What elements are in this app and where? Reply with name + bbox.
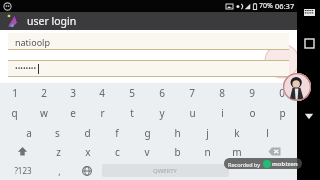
button[interactable]: 7 bbox=[177, 83, 207, 103]
staticText: 6 bbox=[159, 86, 165, 100]
button[interactable]: g bbox=[132, 123, 162, 142]
button[interactable]: 0 bbox=[267, 83, 297, 103]
staticText: 06:37 bbox=[275, 1, 295, 11]
button[interactable]: k bbox=[222, 123, 252, 142]
staticText: e bbox=[70, 106, 76, 120]
staticText: n bbox=[204, 145, 211, 159]
staticText: b bbox=[174, 145, 181, 159]
staticText: u bbox=[189, 106, 196, 120]
button[interactable]: Keyboard bbox=[299, 5, 319, 19]
button[interactable]: 1 bbox=[0, 83, 29, 103]
staticText: y bbox=[159, 106, 165, 120]
button[interactable]: 3 bbox=[58, 83, 87, 103]
button[interactable]: d bbox=[72, 123, 102, 142]
button[interactable]: e bbox=[58, 103, 87, 123]
staticText: w bbox=[40, 106, 48, 120]
button[interactable]: •••••••• bbox=[8, 60, 289, 77]
button[interactable]: b bbox=[162, 142, 192, 161]
staticText: 1 bbox=[12, 86, 18, 100]
staticText: d bbox=[84, 126, 91, 140]
button[interactable]: 2 bbox=[29, 83, 58, 103]
staticText: user login bbox=[27, 14, 77, 28]
button[interactable]: QWERTY bbox=[102, 164, 229, 177]
button[interactable]: u bbox=[177, 103, 207, 123]
button[interactable]: h bbox=[162, 123, 192, 142]
button[interactable]: o bbox=[237, 103, 267, 123]
staticText: a bbox=[26, 126, 32, 140]
staticText: c bbox=[115, 145, 120, 159]
staticText: 5 bbox=[129, 86, 135, 100]
button[interactable]: 5 bbox=[117, 83, 147, 103]
staticText: o bbox=[249, 106, 256, 120]
button[interactable]: 4 bbox=[87, 83, 117, 103]
button[interactable]: natioolp bbox=[8, 33, 289, 50]
staticText: r bbox=[100, 106, 105, 120]
staticText: 9 bbox=[249, 86, 255, 100]
staticText: QWERTY bbox=[153, 167, 178, 175]
button[interactable]: x bbox=[73, 142, 102, 161]
staticText: , bbox=[58, 165, 61, 177]
button[interactable]: Backspace bbox=[252, 142, 297, 161]
staticText: 70% bbox=[259, 1, 273, 11]
button[interactable]: t bbox=[117, 103, 147, 123]
staticText: •••••••• bbox=[15, 64, 37, 74]
button[interactable]: s bbox=[43, 123, 72, 142]
staticText: q bbox=[11, 106, 18, 120]
button[interactable]: 8 bbox=[207, 83, 237, 103]
button[interactable]: z bbox=[44, 142, 73, 161]
staticText: t bbox=[130, 106, 134, 120]
button[interactable]: r bbox=[87, 103, 117, 123]
staticText: p bbox=[279, 106, 286, 120]
button[interactable]: w bbox=[29, 103, 58, 123]
staticText: ?123 bbox=[14, 165, 32, 176]
button[interactable]: 9 bbox=[237, 83, 267, 103]
staticText: natioolp bbox=[15, 36, 50, 48]
button[interactable]: v bbox=[132, 142, 162, 161]
button[interactable]: y bbox=[147, 103, 177, 123]
staticText: h bbox=[174, 126, 181, 140]
staticText: 2 bbox=[41, 86, 47, 100]
button[interactable]: user login bbox=[0, 12, 297, 30]
staticText: 3 bbox=[70, 86, 76, 100]
button[interactable]: ?123 bbox=[0, 161, 45, 180]
staticText: v bbox=[144, 145, 150, 159]
staticText: i bbox=[221, 106, 224, 120]
staticText: f bbox=[115, 126, 119, 140]
staticText: x bbox=[85, 145, 91, 159]
button[interactable]: 6 bbox=[147, 83, 177, 103]
button[interactable]: l bbox=[252, 123, 282, 142]
staticText: m bbox=[232, 145, 242, 159]
button[interactable]: c bbox=[102, 142, 132, 161]
button[interactable]: m bbox=[222, 142, 252, 161]
staticText: 7 bbox=[189, 86, 195, 100]
staticText: Recorded by bbox=[228, 161, 261, 168]
staticText: j bbox=[206, 126, 209, 140]
staticText: l bbox=[266, 126, 269, 140]
button[interactable]: Floating avatar bbox=[283, 73, 311, 101]
staticText: s bbox=[55, 126, 60, 140]
staticText: 8 bbox=[219, 86, 225, 100]
staticText: 0 bbox=[279, 86, 285, 100]
staticText: g bbox=[144, 126, 151, 140]
button[interactable]: Recent apps bbox=[299, 33, 319, 53]
button[interactable]: Change language bbox=[73, 161, 101, 180]
button[interactable]: f bbox=[102, 123, 132, 142]
staticText: 4 bbox=[99, 86, 105, 100]
staticText: z bbox=[56, 145, 61, 159]
button[interactable]: n bbox=[192, 142, 222, 161]
button[interactable]: j bbox=[192, 123, 222, 142]
staticText: mobizen bbox=[272, 160, 298, 168]
button[interactable]: i bbox=[207, 103, 237, 123]
button[interactable]: p bbox=[267, 103, 297, 123]
button[interactable]: Hide keyboard bbox=[299, 106, 319, 126]
button[interactable]: Shift bbox=[0, 142, 44, 161]
button[interactable]: , bbox=[45, 161, 73, 180]
button[interactable]: q bbox=[0, 103, 29, 123]
button[interactable]: a bbox=[14, 123, 43, 142]
staticText: k bbox=[234, 126, 240, 140]
